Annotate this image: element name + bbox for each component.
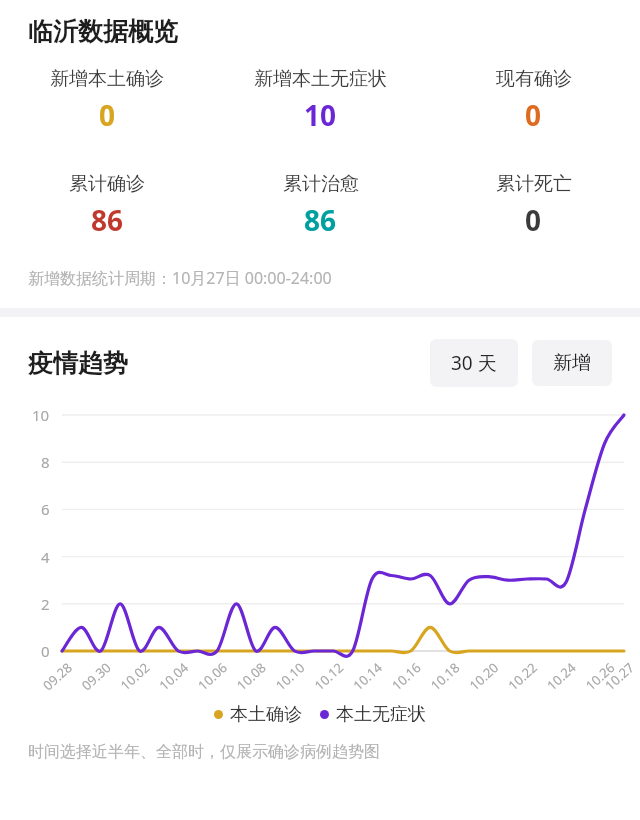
staticText: 新增数据统计周期：10月27日 00:00-24:00 [28,267,332,289]
button[interactable]: 累计死亡 [427,172,640,239]
staticText: 0 [99,96,116,134]
staticText: 本土确诊 [230,703,302,726]
staticText: 累计确诊 [69,172,145,196]
other: 疫情趋势折线图 [0,403,640,703]
button[interactable]: 累计确诊 [0,172,214,239]
staticText: 现有确诊 [496,67,572,91]
button[interactable]: 新增本土无症状 [214,67,427,134]
staticText: 86 [91,201,124,239]
staticText: 0 [525,201,542,239]
staticText: 疫情趋势 [28,348,128,379]
staticText: 本土无症状 [336,703,426,726]
staticText: 新增 [553,351,591,375]
button[interactable]: 现有确诊 [427,67,640,134]
staticText: 累计死亡 [496,172,572,196]
button[interactable]: 累计治愈 [214,172,427,239]
staticText: 临沂数据概览 [28,16,178,47]
staticText: 86 [304,201,337,239]
staticText: 累计治愈 [283,172,359,196]
staticText: 新增本土确诊 [50,67,164,91]
staticText: 时间选择近半年、全部时，仅展示确诊病例趋势图 [28,742,380,762]
staticText: 10 [304,96,337,134]
button[interactable]: 本土确诊 [214,703,302,726]
button[interactable]: 本土无症状 [320,703,426,726]
staticText: 30 天 [451,350,497,376]
button[interactable]: 30 天 [430,339,518,387]
button[interactable]: 新增本土确诊 [0,67,214,134]
button[interactable]: 新增 [532,340,612,386]
staticText: 新增本土无症状 [254,67,387,91]
staticText: 0 [525,96,542,134]
